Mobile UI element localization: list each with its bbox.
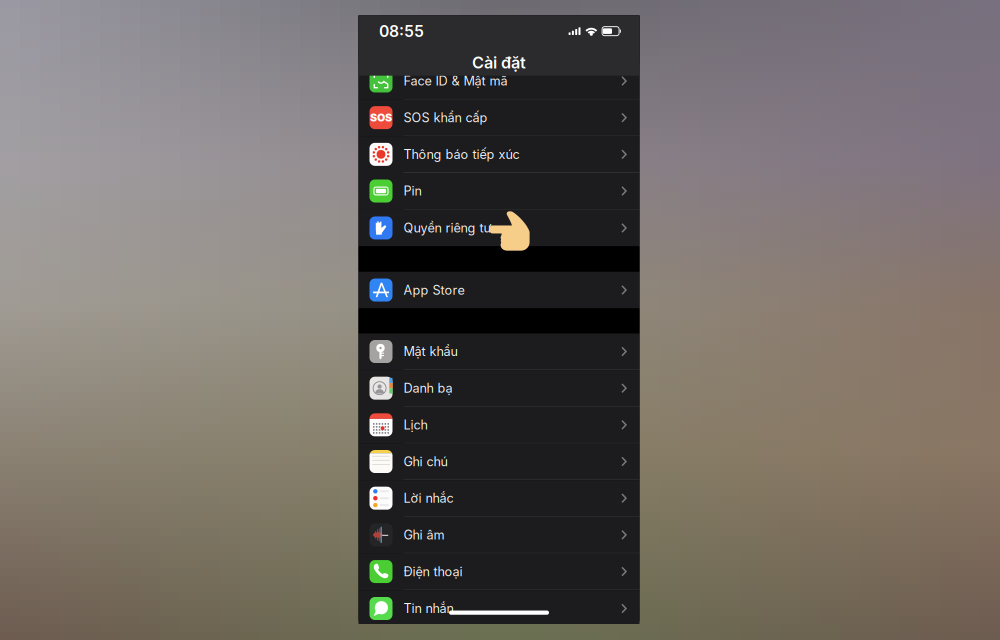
button[interactable]: SOS [358,100,639,136]
button[interactable]: Lời nhắc [358,480,639,517]
staticText: 08:55 [379,22,424,41]
staticText: Quyền riêng tư [403,220,491,236]
staticText: Thông báo tiếp xúc [403,147,519,162]
button[interactable]: Quyền riêng tư [358,210,639,246]
button[interactable]: Face ID & Mật mã [358,63,639,100]
staticText: Tin nhắn [403,601,453,616]
staticText: Ghi chú [403,454,447,469]
button[interactable]: App Store [358,272,639,308]
staticText: Cài đặt [472,53,526,72]
staticText: SOS [370,111,392,124]
staticText: Pin [403,183,421,199]
staticText: Mật khẩu [403,344,457,359]
button[interactable]: Danh bạ [358,370,639,407]
button[interactable]: Lịch [358,407,639,443]
button[interactable]: Điện thoại [358,553,639,590]
button[interactable]: Pin [358,173,639,210]
button[interactable]: Ghi âm [358,517,639,553]
button[interactable]: Tin nhắn [358,590,639,627]
button[interactable]: Thông báo tiếp xúc [358,136,639,173]
staticText: Ghi âm [403,527,444,542]
staticText: Lịch [403,417,427,432]
staticText: Danh bạ [403,380,452,396]
staticText: App Store [403,282,464,298]
staticText: Face ID & Mật mã [403,73,507,89]
staticText: Lời nhắc [403,490,453,506]
staticText: SOS khẩn cấp [403,110,487,125]
staticText: Điện thoại [403,564,462,579]
button[interactable]: Mật khẩu [358,333,639,370]
button[interactable]: Ghi chú [358,443,639,480]
